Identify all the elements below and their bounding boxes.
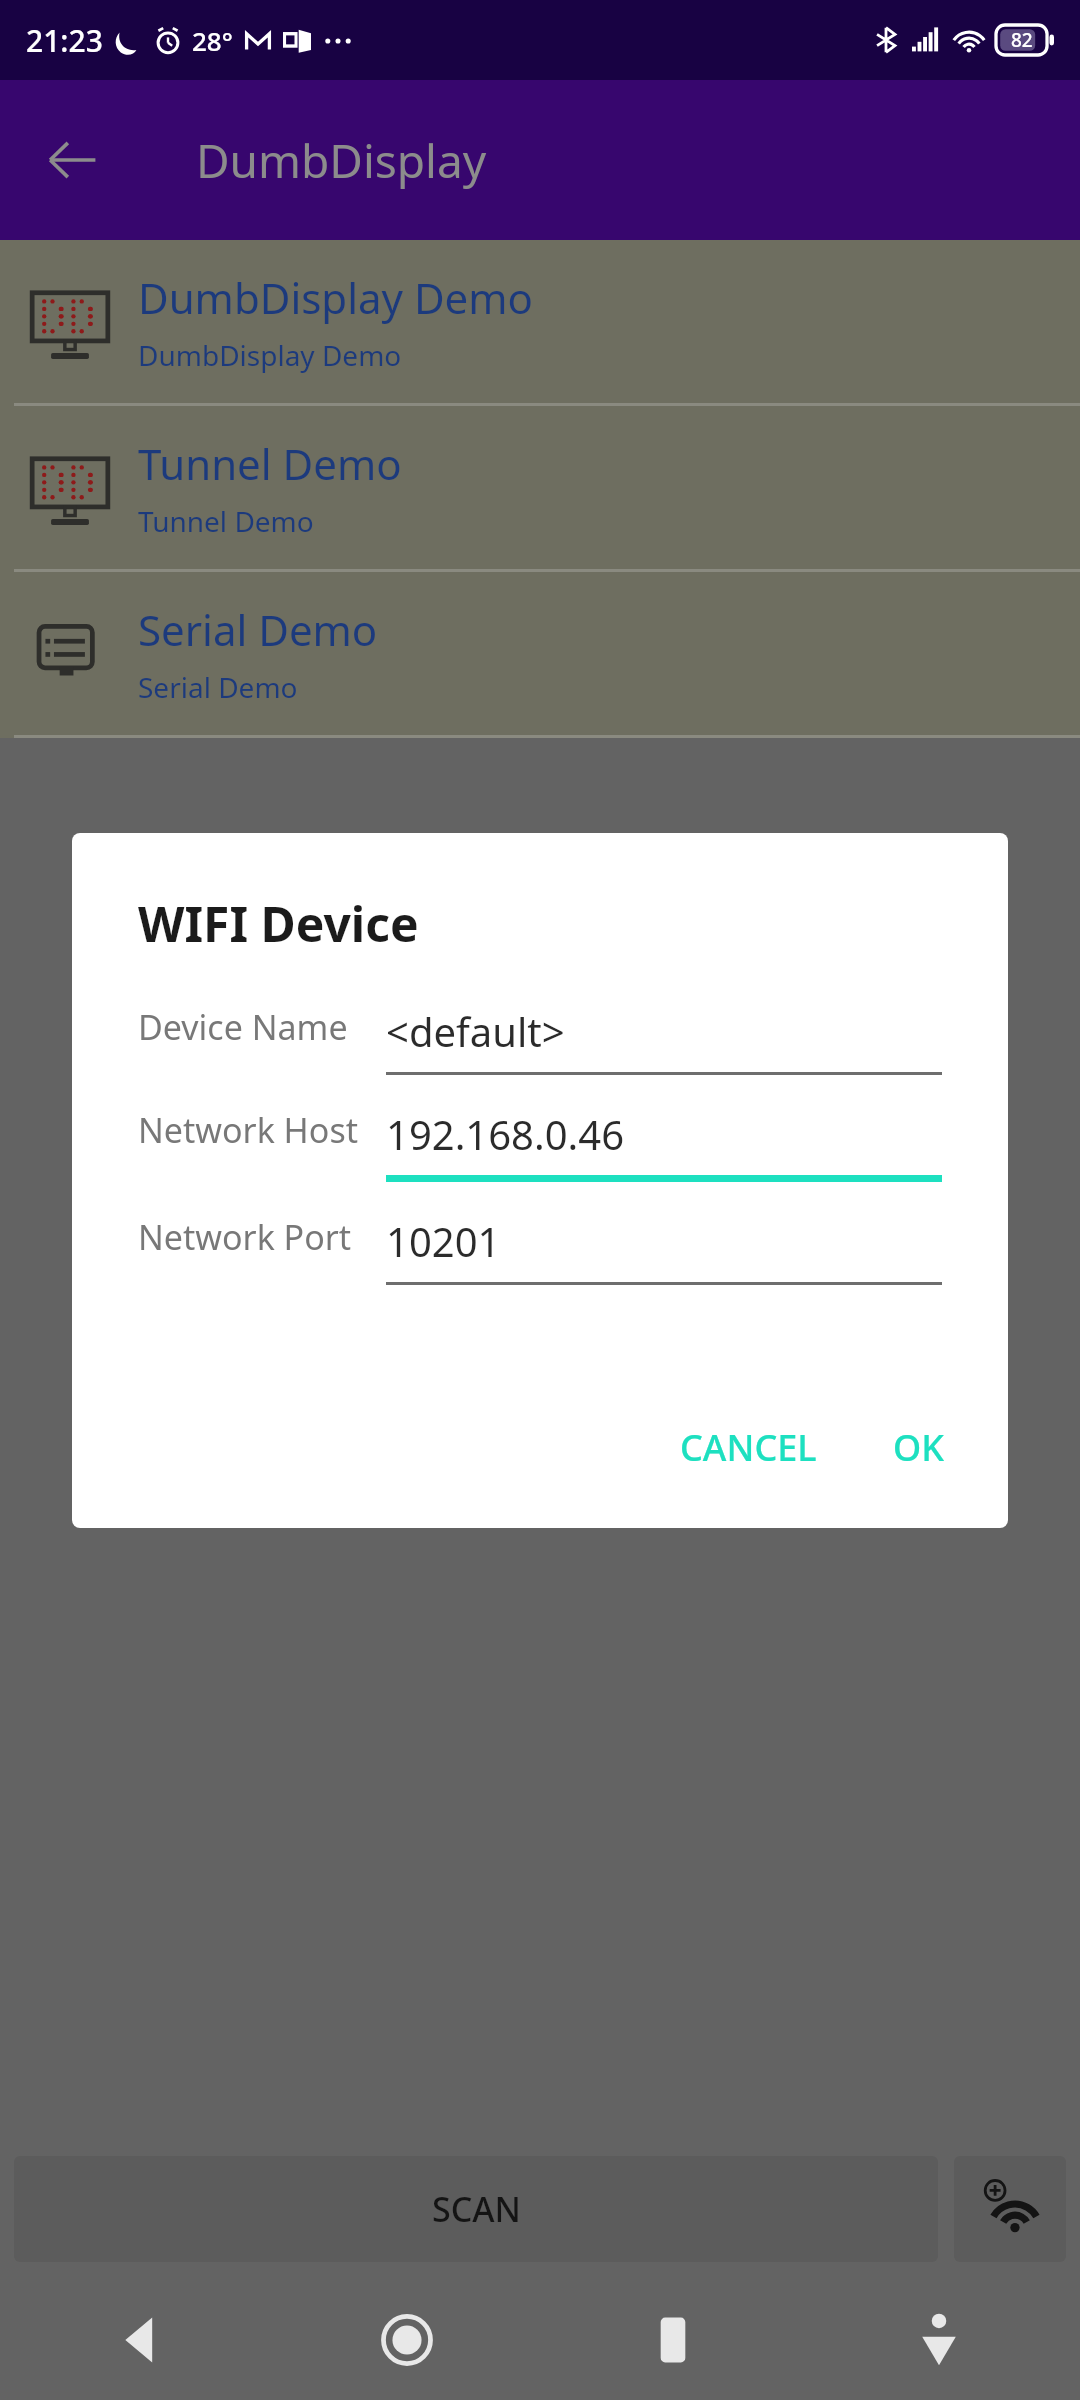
staticText: DumbDisplay Demo: [138, 269, 533, 326]
staticText: Tunnel Demo: [138, 435, 402, 492]
staticText: Network Port: [138, 1214, 352, 1260]
button[interactable]: CANCEL: [660, 1409, 837, 1486]
staticText: 10201: [386, 1214, 501, 1268]
staticText: CANCEL: [680, 1423, 817, 1472]
staticText: Serial Demo: [138, 601, 378, 658]
staticText: Tunnel Demo: [138, 502, 314, 540]
button[interactable]: Tunnel Demo: [0, 406, 1080, 569]
staticText: OK: [893, 1423, 944, 1472]
staticText: 82: [1011, 27, 1033, 53]
staticText: <default>: [386, 1004, 565, 1058]
button[interactable]: SCAN: [14, 2156, 938, 2262]
button[interactable]: DumbDisplay Demo: [0, 240, 1080, 403]
button[interactable]: 192.168.0.46: [386, 1107, 942, 1182]
staticText: DumbDisplay: [196, 129, 487, 192]
button[interactable]: Home: [359, 2292, 455, 2388]
button[interactable]: Back: [93, 2292, 189, 2388]
button[interactable]: OK: [873, 1409, 964, 1486]
button[interactable]: Recents: [625, 2292, 721, 2388]
staticText: Serial Demo: [138, 668, 298, 706]
button[interactable]: Back: [28, 116, 116, 204]
staticText: DumbDisplay Demo: [138, 336, 402, 374]
staticText: WIFI Device: [138, 891, 419, 956]
button[interactable]: <default>: [386, 1004, 942, 1075]
button[interactable]: Add WiFi device: [954, 2156, 1066, 2262]
staticText: 192.168.0.46: [386, 1107, 625, 1161]
button[interactable]: Serial Demo: [0, 572, 1080, 735]
button[interactable]: 10201: [386, 1214, 942, 1285]
staticText: Network Host: [138, 1107, 358, 1153]
button[interactable]: Hide: [891, 2292, 987, 2388]
staticText: Device Name: [138, 1004, 348, 1050]
staticText: SCAN: [432, 2186, 521, 2232]
staticText: 21:23: [26, 20, 103, 61]
staticText: 28°: [192, 23, 233, 58]
